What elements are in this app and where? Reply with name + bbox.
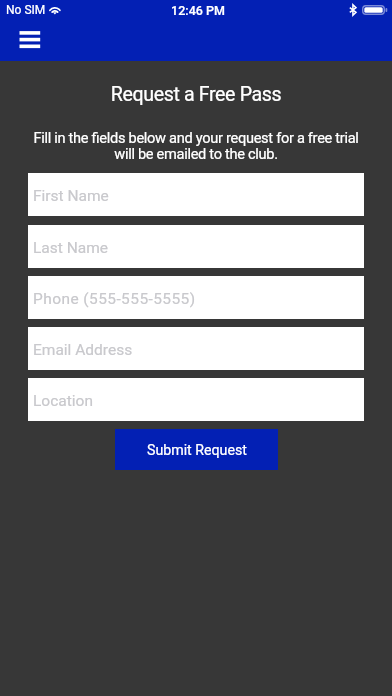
button[interactable]: Location bbox=[28, 378, 364, 421]
staticText: Fill in the fields below and your reques… bbox=[28, 129, 364, 163]
button[interactable]: Submit Request bbox=[115, 429, 278, 470]
button[interactable]: First Name bbox=[28, 173, 364, 216]
button[interactable]: Last Name bbox=[28, 225, 364, 268]
button[interactable]: Menu bbox=[12, 24, 48, 54]
staticText: Last Name bbox=[33, 239, 108, 257]
staticText: First Name bbox=[33, 187, 109, 205]
staticText: 12:46 PM bbox=[2, 3, 392, 18]
staticText: Request a Free Pass bbox=[0, 83, 392, 106]
staticText: Phone (555-555-5555) bbox=[33, 290, 196, 308]
staticText: No SIM bbox=[6, 3, 46, 17]
button[interactable]: Phone (555-555-5555) bbox=[28, 276, 364, 319]
staticText: Submit Request bbox=[147, 442, 247, 459]
staticText: Email Address bbox=[33, 341, 133, 359]
button[interactable]: Email Address bbox=[28, 327, 364, 370]
staticText: Location bbox=[33, 392, 93, 410]
